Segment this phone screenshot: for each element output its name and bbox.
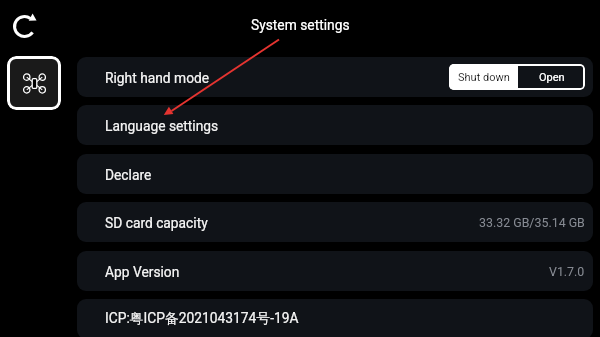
button[interactable]: App Version xyxy=(77,251,593,291)
button[interactable]: SD card capacity xyxy=(77,202,593,242)
staticText: Open xyxy=(539,71,565,84)
staticText: Language settings xyxy=(105,118,219,134)
staticText: SD card capacity xyxy=(105,215,208,231)
button[interactable]: Refresh xyxy=(13,15,36,38)
button[interactable]: Aircraft xyxy=(7,56,61,110)
button[interactable]: Open xyxy=(518,64,585,90)
staticText: 33.32 GB/35.14 GB xyxy=(479,215,585,230)
button[interactable]: Shut down xyxy=(449,64,518,90)
staticText: V1.7.0 xyxy=(549,264,585,279)
staticText: System settings xyxy=(251,17,350,33)
button[interactable]: Declare xyxy=(77,154,593,194)
staticText: Declare xyxy=(105,167,152,183)
staticText: Right hand mode xyxy=(105,70,210,86)
staticText: App Version xyxy=(105,264,180,280)
staticText: ICP:粤ICP备2021043174号-19A xyxy=(105,310,299,327)
button[interactable]: Language settings xyxy=(77,105,593,145)
staticText: Shut down xyxy=(458,71,510,84)
button[interactable]: ICP:粤ICP备2021043174号-19A xyxy=(77,299,593,337)
button[interactable]: Right hand mode xyxy=(77,57,593,97)
